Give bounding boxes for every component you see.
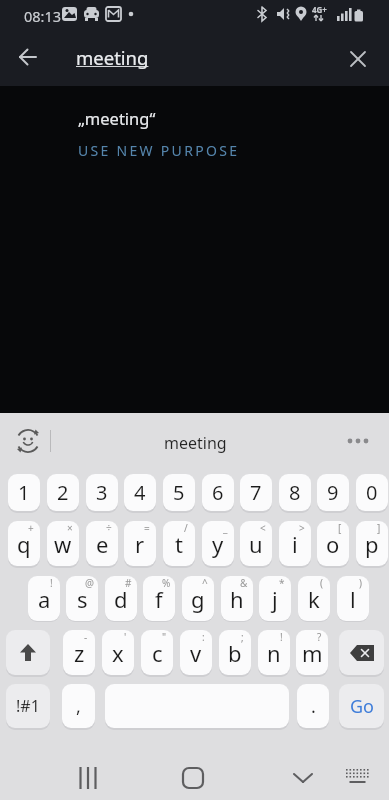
button[interactable]: y — [202, 521, 234, 566]
staticText: " — [162, 630, 167, 644]
button[interactable] — [105, 684, 289, 728]
button[interactable] — [275, 758, 331, 798]
staticText: g — [191, 584, 205, 614]
staticText: a — [38, 584, 51, 614]
button[interactable]: i — [279, 521, 311, 566]
button[interactable]: j — [259, 576, 291, 621]
staticText: m — [302, 638, 323, 668]
button[interactable]: d — [105, 576, 137, 621]
button[interactable]: c — [141, 630, 173, 675]
button[interactable]: r — [124, 521, 156, 566]
button[interactable]: x — [102, 630, 134, 675]
button[interactable] — [8, 425, 48, 457]
staticText: , — [76, 694, 81, 719]
button[interactable]: Go — [339, 684, 384, 728]
button[interactable]: v — [180, 630, 212, 675]
button[interactable]: 9 — [317, 474, 349, 511]
staticText: _ — [223, 521, 228, 535]
staticText: n — [267, 638, 281, 668]
staticText: > — [299, 521, 305, 535]
button[interactable] — [6, 630, 50, 675]
staticText: ! — [50, 576, 53, 590]
button[interactable]: p — [356, 521, 388, 566]
button[interactable]: USE NEW PURPOSE — [78, 141, 240, 160]
button[interactable]: 7 — [240, 474, 272, 511]
staticText: u — [249, 529, 263, 559]
staticText: p — [365, 529, 379, 559]
button[interactable]: k — [298, 576, 330, 621]
button[interactable]: u — [240, 521, 272, 566]
button[interactable] — [165, 758, 221, 798]
staticText: 3 — [96, 479, 108, 506]
button[interactable]: b — [219, 630, 251, 675]
button[interactable]: q — [8, 521, 40, 566]
button[interactable]: , — [62, 684, 95, 728]
staticText: . — [311, 694, 316, 719]
button[interactable]: 6 — [202, 474, 234, 511]
staticText: 0 — [366, 479, 378, 506]
staticText: „meeting“ — [78, 107, 156, 129]
staticText: meeting — [76, 45, 149, 70]
button[interactable]: l — [337, 576, 369, 621]
staticText: 6 — [212, 479, 224, 506]
button[interactable]: t — [163, 521, 195, 566]
button[interactable] — [335, 425, 381, 457]
staticText: ; — [241, 630, 244, 644]
staticText: - — [84, 630, 88, 644]
button[interactable]: w — [47, 521, 79, 566]
button[interactable] — [339, 630, 384, 675]
staticText: ) — [359, 576, 362, 590]
staticText: & — [240, 576, 248, 590]
staticText: o — [326, 529, 340, 559]
staticText: b — [228, 638, 242, 668]
button[interactable]: . — [297, 684, 329, 728]
staticText: : — [202, 630, 205, 644]
button[interactable]: !#1 — [6, 684, 50, 728]
staticText: 5 — [173, 479, 185, 506]
button[interactable]: 0 — [356, 474, 388, 511]
button[interactable]: h — [221, 576, 253, 621]
button[interactable]: e — [86, 521, 118, 566]
staticText: r — [135, 529, 145, 559]
button[interactable]: 8 — [279, 474, 311, 511]
button[interactable] — [338, 760, 378, 796]
button[interactable]: f — [143, 576, 175, 621]
staticText: v — [190, 638, 202, 668]
button[interactable]: 2 — [47, 474, 79, 511]
button[interactable]: z — [63, 630, 95, 675]
staticText: ? — [317, 630, 322, 644]
button[interactable] — [8, 43, 48, 71]
button[interactable]: 1 — [8, 474, 40, 511]
staticText: i — [292, 529, 298, 559]
staticText: @ — [85, 576, 94, 590]
staticText: ( — [320, 576, 323, 590]
staticText: % — [162, 576, 171, 590]
staticText: !#1 — [16, 695, 40, 717]
button[interactable]: 5 — [163, 474, 195, 511]
staticText: ! — [280, 630, 283, 644]
staticText: h — [230, 584, 244, 614]
button[interactable]: m — [296, 630, 328, 675]
button[interactable] — [60, 758, 116, 798]
staticText: 2 — [57, 479, 69, 506]
button[interactable]: g — [182, 576, 214, 621]
button[interactable] — [340, 45, 376, 73]
staticText: ÷ — [106, 521, 112, 535]
button[interactable]: a — [28, 576, 60, 621]
staticText: z — [74, 638, 85, 668]
button[interactable]: meeting — [120, 427, 270, 459]
button[interactable]: 4 — [124, 474, 156, 511]
staticText: × — [67, 521, 73, 535]
staticText: 4 — [134, 479, 146, 506]
staticText: k — [308, 584, 320, 614]
staticText: 9 — [327, 479, 339, 506]
staticText: 08:13 — [24, 6, 62, 26]
staticText: f — [155, 584, 163, 614]
staticText: s — [77, 584, 88, 614]
button[interactable]: n — [258, 630, 290, 675]
button[interactable]: s — [66, 576, 98, 621]
staticText: e — [96, 529, 109, 559]
button[interactable]: 3 — [86, 474, 118, 511]
staticText: ^ — [202, 576, 208, 590]
button[interactable]: o — [317, 521, 349, 566]
